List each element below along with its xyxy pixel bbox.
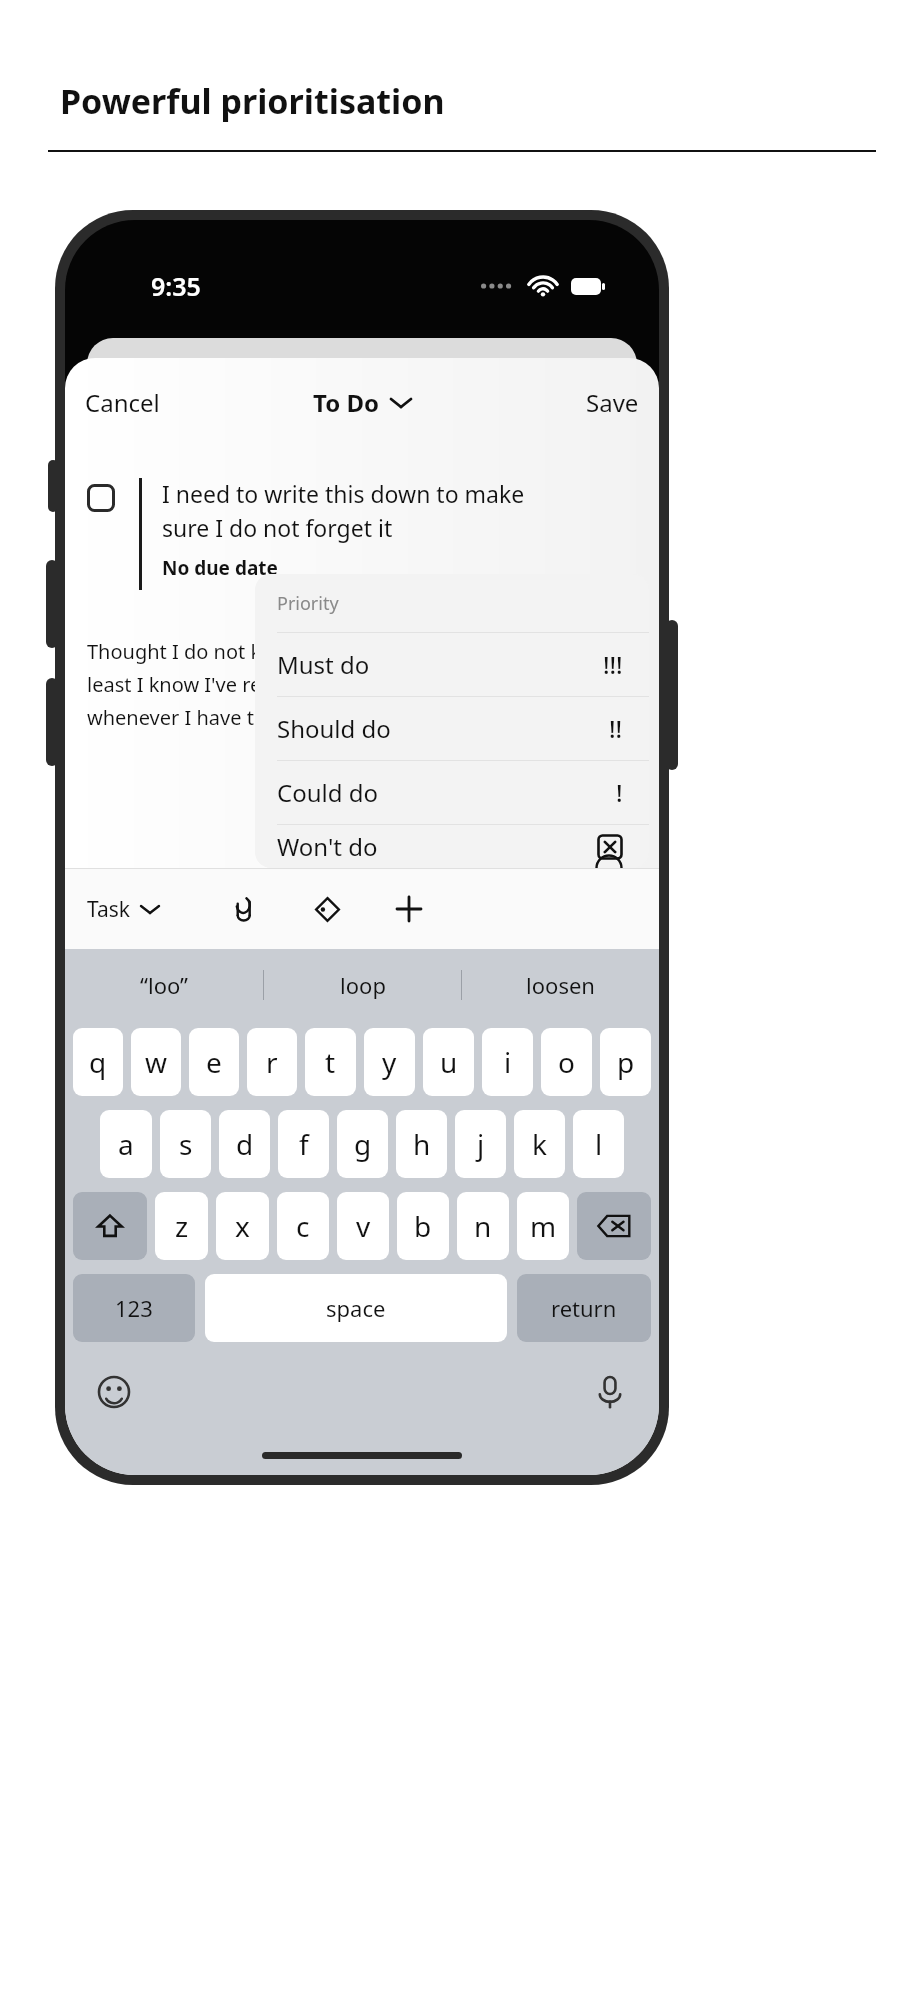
button[interactable]: Emoji [87,1365,141,1419]
staticText: h [413,1125,431,1163]
staticText: i [504,1043,512,1081]
staticText: a [118,1125,134,1163]
staticText: 123 [115,1293,153,1323]
staticText: !! [609,712,623,745]
button[interactable]: o [541,1028,592,1096]
button[interactable]: space [205,1274,507,1342]
staticText: “loo” [140,970,188,1000]
staticText: Should do [277,712,609,745]
button[interactable]: 123 [73,1274,195,1342]
staticText: f [299,1125,309,1163]
staticText: z [175,1207,189,1245]
staticText: loop [340,970,386,1000]
staticText: c [296,1207,310,1245]
staticText: g [354,1125,372,1163]
button[interactable]: f [278,1110,329,1178]
button[interactable]: Complete task [87,484,115,512]
staticText: Thought I do not know when I will do thi… [87,638,505,731]
button[interactable]: l [573,1110,624,1178]
staticText: b [414,1207,432,1245]
button[interactable]: w [131,1028,181,1096]
staticText: Cancel [85,386,160,419]
staticText: To Do [313,386,379,419]
staticText: x [235,1207,250,1245]
button[interactable]: z [155,1192,208,1260]
button[interactable]: Task [65,885,177,934]
staticText: e [206,1043,222,1081]
staticText: space [326,1293,386,1323]
staticText: Could do [277,776,616,809]
staticText: return [551,1293,617,1323]
staticText: Powerful prioritisation [60,78,445,124]
button[interactable]: Could do [255,761,649,824]
button[interactable]: Cancel [65,376,176,429]
button[interactable]: To Do [301,378,423,427]
button[interactable]: j [455,1110,506,1178]
button[interactable]: Dictate [583,1365,637,1419]
button[interactable]: b [397,1192,449,1260]
staticText: o [558,1043,575,1081]
staticText: w [145,1043,168,1081]
button[interactable]: d [219,1110,270,1178]
staticText: d [236,1125,254,1163]
staticText: I need to write this down to make sure I… [162,478,525,543]
button[interactable]: g [337,1110,388,1178]
button[interactable]: Must do [255,633,649,696]
staticText: j [477,1125,485,1163]
button[interactable]: loosen [462,949,659,1021]
button[interactable]: Should do [255,697,649,760]
staticText: Task [87,895,131,924]
button[interactable]: p [600,1028,651,1096]
staticText: No due date [162,555,278,581]
staticText: Priority [277,591,339,616]
staticText: k [532,1125,547,1163]
staticText: m [530,1207,557,1245]
button[interactable]: h [396,1110,447,1178]
button[interactable]: loop [264,949,461,1021]
staticText: Save [586,386,639,419]
button[interactable]: Attach file [219,883,271,935]
button[interactable]: “loo” [65,949,263,1021]
staticText: t [325,1043,336,1081]
button[interactable]: v [337,1192,389,1260]
button[interactable]: y [364,1028,415,1096]
button[interactable]: a [100,1110,152,1178]
staticText: p [617,1043,635,1081]
button[interactable]: k [514,1110,565,1178]
button[interactable]: Won't do [255,825,649,868]
staticText: y [382,1043,397,1081]
button[interactable]: e [189,1028,239,1096]
staticText: u [440,1043,458,1081]
button[interactable]: return [517,1274,651,1342]
staticText: s [179,1125,193,1163]
staticText: ! [616,776,623,809]
staticText: v [356,1207,371,1245]
staticText: r [266,1043,278,1081]
button[interactable]: r [247,1028,297,1096]
staticText: Won't do [277,830,597,863]
button[interactable]: Save [570,376,659,429]
button[interactable]: Add tag [301,883,353,935]
button[interactable]: u [423,1028,474,1096]
button[interactable]: Backspace [577,1192,651,1260]
button[interactable]: Shift [73,1192,147,1260]
button[interactable]: c [277,1192,329,1260]
button[interactable]: t [305,1028,356,1096]
button[interactable]: s [160,1110,211,1178]
staticText: loosen [526,970,595,1000]
button[interactable]: x [216,1192,269,1260]
button[interactable]: m [517,1192,569,1260]
button[interactable]: i [482,1028,533,1096]
staticText: 9:35 [151,269,201,303]
button[interactable]: Add [383,883,435,935]
staticText: n [474,1207,492,1245]
staticText: Must do [277,648,603,681]
staticText: q [89,1043,107,1081]
button[interactable]: q [73,1028,123,1096]
staticText: l [595,1125,603,1163]
button[interactable]: n [457,1192,509,1260]
staticText: !!! [603,648,623,681]
